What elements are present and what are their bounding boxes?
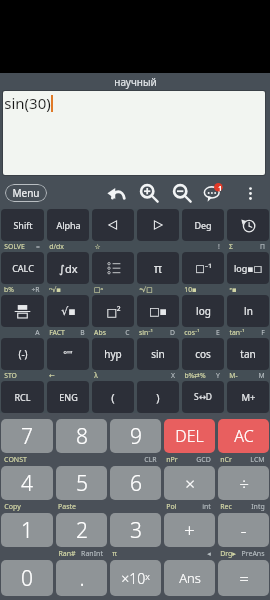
button[interactable]: RCL <box>1 381 44 413</box>
staticText: RanInt <box>81 549 103 559</box>
staticText: ln <box>244 304 253 318</box>
button[interactable]: □▪ <box>137 295 179 327</box>
button[interactable]: 4 <box>1 466 53 500</box>
button[interactable]: π <box>137 252 179 284</box>
button[interactable]: Undo <box>105 182 127 204</box>
staticText: ) <box>156 390 160 405</box>
button[interactable]: Shift <box>1 209 44 241</box>
staticText: tan <box>240 347 256 361</box>
staticText: X <box>171 371 175 380</box>
button[interactable] <box>137 209 179 241</box>
staticText: cos <box>195 347 211 361</box>
button[interactable]: ln <box>227 295 269 327</box>
button[interactable]: (-) <box>1 338 44 370</box>
button[interactable]: Menu <box>5 184 47 202</box>
staticText: ☆ <box>94 243 101 251</box>
button[interactable]: × <box>164 466 215 500</box>
staticText: S↔D <box>194 391 212 403</box>
staticText: 1 <box>21 516 33 545</box>
staticText: Ans <box>179 569 201 587</box>
button[interactable] <box>92 209 134 241</box>
button[interactable]: = <box>218 560 269 596</box>
button[interactable]: log▪□ <box>227 252 269 284</box>
button[interactable]: ∫dx <box>47 252 89 284</box>
button[interactable]: Zoom in <box>138 182 160 204</box>
button[interactable]: - <box>218 513 269 547</box>
staticText: Π <box>260 242 265 251</box>
staticText: sin <box>151 347 165 361</box>
button[interactable]: □⁻¹ <box>182 252 224 284</box>
button[interactable]: °'" <box>47 338 89 370</box>
staticText: ᵃ√□ <box>139 285 153 294</box>
button[interactable]: Ans <box>164 560 215 596</box>
button[interactable]: □² <box>92 295 134 327</box>
staticText: M+ <box>241 391 256 404</box>
staticText: ! <box>218 242 220 251</box>
staticText: ◂ <box>207 550 211 558</box>
staticText: CLR <box>144 455 157 465</box>
staticText: Abs <box>94 328 106 337</box>
button[interactable]: S↔D <box>182 381 224 413</box>
button[interactable] <box>92 252 134 284</box>
button[interactable]: ENG <box>47 381 89 413</box>
staticText: 4 <box>21 469 33 498</box>
staticText: Σ <box>229 242 233 251</box>
button[interactable]: 7 <box>1 419 53 453</box>
button[interactable]: ( <box>92 381 134 413</box>
button[interactable]: 8 <box>56 419 107 453</box>
button[interactable] <box>227 209 269 241</box>
button[interactable]: M+ <box>227 381 269 413</box>
button[interactable]: 6 <box>110 466 161 500</box>
staticText: ÷ <box>239 472 249 495</box>
button[interactable]: . <box>56 560 107 596</box>
button[interactable]: 5 <box>56 466 107 500</box>
button[interactable]: Zoom out <box>171 182 193 204</box>
staticText: PreAns <box>241 549 265 559</box>
button[interactable]: 9 <box>110 419 161 453</box>
staticText: M <box>258 371 265 380</box>
button[interactable]: ÷ <box>218 466 269 500</box>
button[interactable]: DEL <box>164 419 215 453</box>
staticText: λ <box>94 371 98 380</box>
staticText: = <box>36 242 40 251</box>
staticText: = <box>239 567 249 590</box>
button[interactable]: log <box>182 295 224 327</box>
button[interactable] <box>1 295 44 327</box>
button[interactable]: Alpha <box>47 209 89 241</box>
button[interactable]: Deg <box>182 209 224 241</box>
button[interactable]: 3 <box>110 513 161 547</box>
staticText: 7 <box>21 422 33 451</box>
button[interactable]: ×10ˣ <box>110 560 161 596</box>
staticText: 9 <box>130 422 142 451</box>
button[interactable]: More options <box>241 184 259 202</box>
staticText: SOLVE <box>4 242 25 251</box>
staticText: □² <box>106 304 121 319</box>
staticText: GCD <box>196 455 211 465</box>
staticText: Menu <box>12 186 40 200</box>
button[interactable]: CALC <box>1 252 44 284</box>
button[interactable]: cos <box>182 338 224 370</box>
staticText: CALC <box>12 262 34 274</box>
staticText: Y <box>216 371 220 380</box>
button[interactable]: √▪ <box>47 295 89 327</box>
staticText: + <box>184 517 195 543</box>
staticText: Copy <box>4 502 21 512</box>
button[interactable]: sin <box>137 338 179 370</box>
staticText: E <box>216 328 220 337</box>
button[interactable]: AC <box>218 419 269 453</box>
staticText: log▪□ <box>234 262 262 274</box>
button[interactable]: 2 <box>56 513 107 547</box>
button[interactable]: tan <box>227 338 269 370</box>
button[interactable]: ) <box>137 381 179 413</box>
button[interactable]: 0 <box>1 560 53 596</box>
staticText: . <box>79 564 85 593</box>
staticText: int <box>202 502 211 512</box>
button[interactable]: hyp <box>92 338 134 370</box>
staticText: sin(30) <box>4 93 51 113</box>
staticText: ∫dx <box>59 261 78 276</box>
staticText: CONST <box>4 455 27 465</box>
button[interactable]: 1 <box>1 513 53 547</box>
button[interactable]: Messages <box>202 182 224 204</box>
staticText: ← <box>49 372 55 380</box>
button[interactable]: + <box>164 513 215 547</box>
